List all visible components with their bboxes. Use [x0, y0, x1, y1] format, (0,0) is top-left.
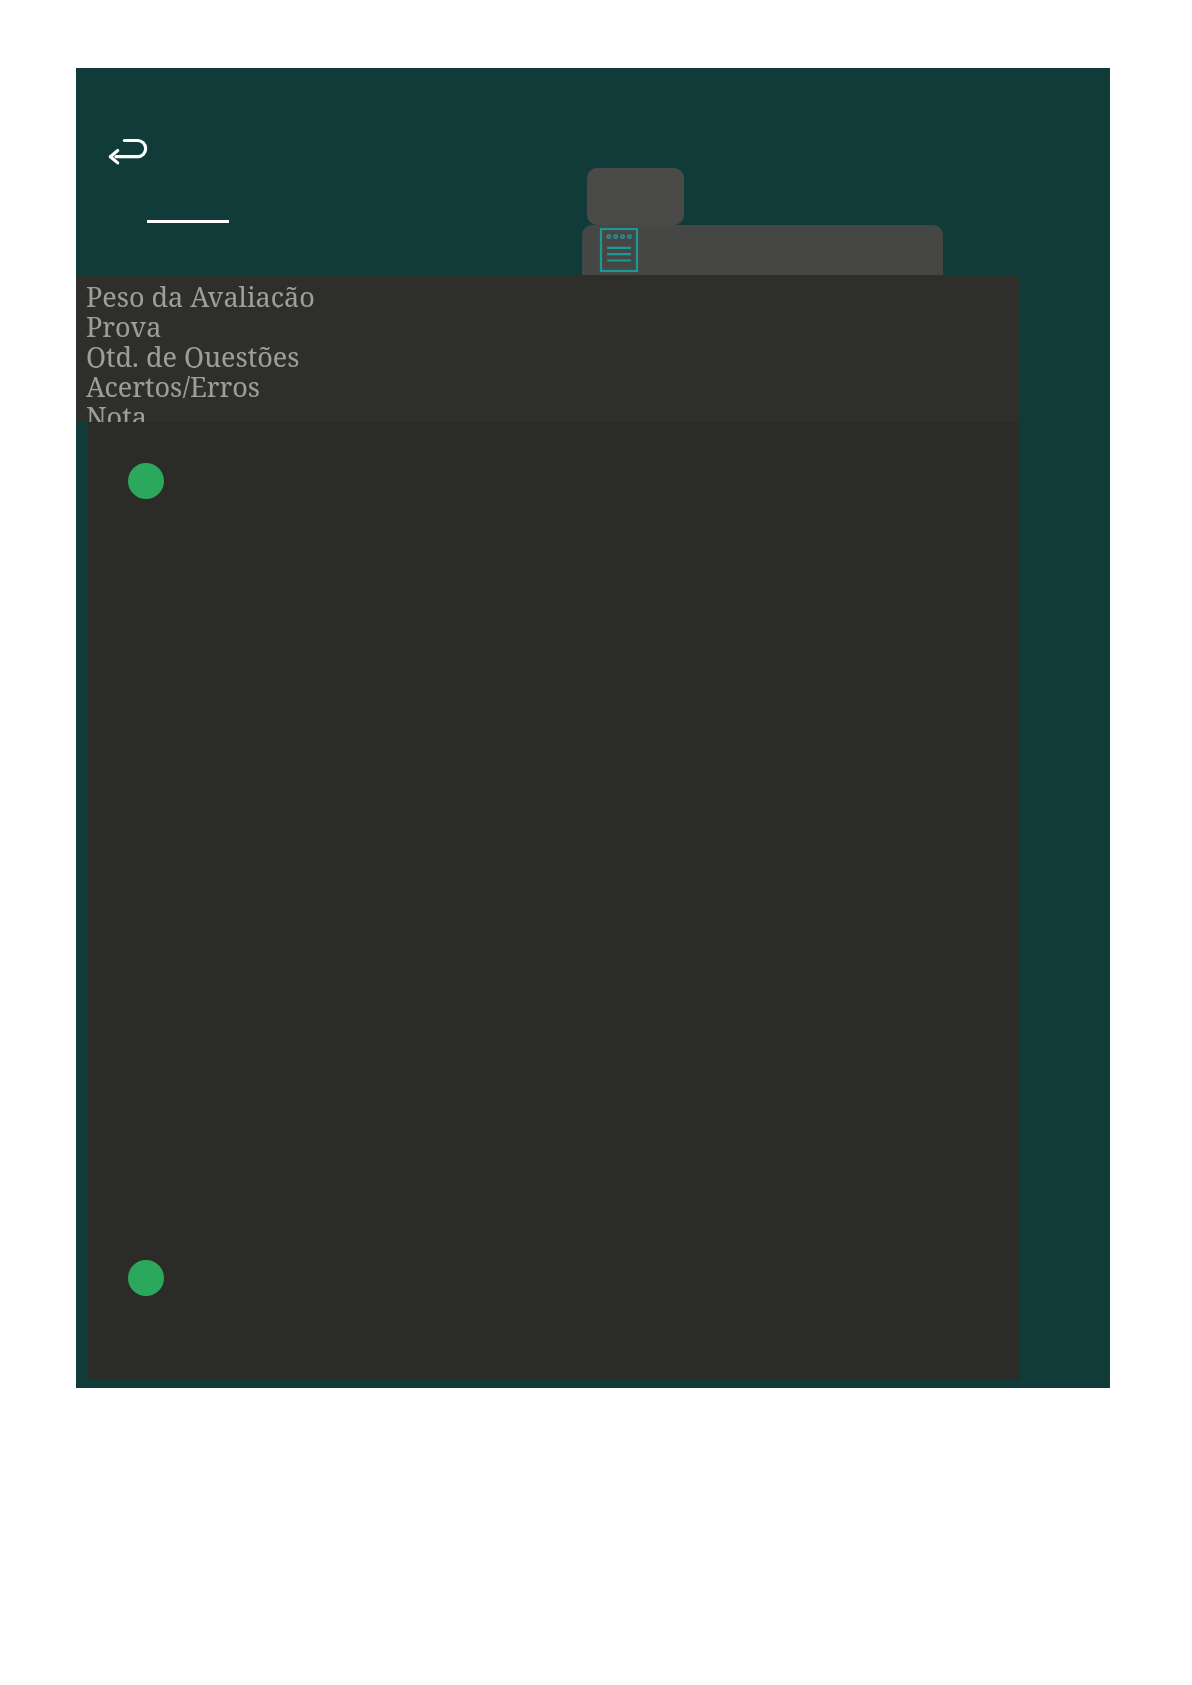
- button[interactable]: Acertos/Erros: [86, 368, 486, 398]
- staticText: Acertos/Erros: [86, 368, 260, 398]
- staticText: Prova: [86, 308, 162, 338]
- button[interactable]: Lista de avaliações: [582, 225, 943, 275]
- button[interactable]: Peso da Avaliação: [86, 278, 486, 308]
- staticText: Nota: [86, 398, 147, 425]
- staticText: Qtd. de Questões: [86, 338, 300, 368]
- button[interactable]: Qtd. de Questões: [86, 338, 486, 368]
- staticText: Peso da Avaliação: [86, 278, 315, 308]
- button[interactable]: Status aprovado: [128, 1260, 164, 1296]
- button[interactable]: Voltar: [102, 122, 158, 178]
- button[interactable]: Prova: [86, 308, 486, 338]
- button[interactable]: [587, 168, 684, 225]
- button[interactable]: Nota: [86, 398, 486, 425]
- button[interactable]: Status aprovado: [128, 463, 164, 499]
